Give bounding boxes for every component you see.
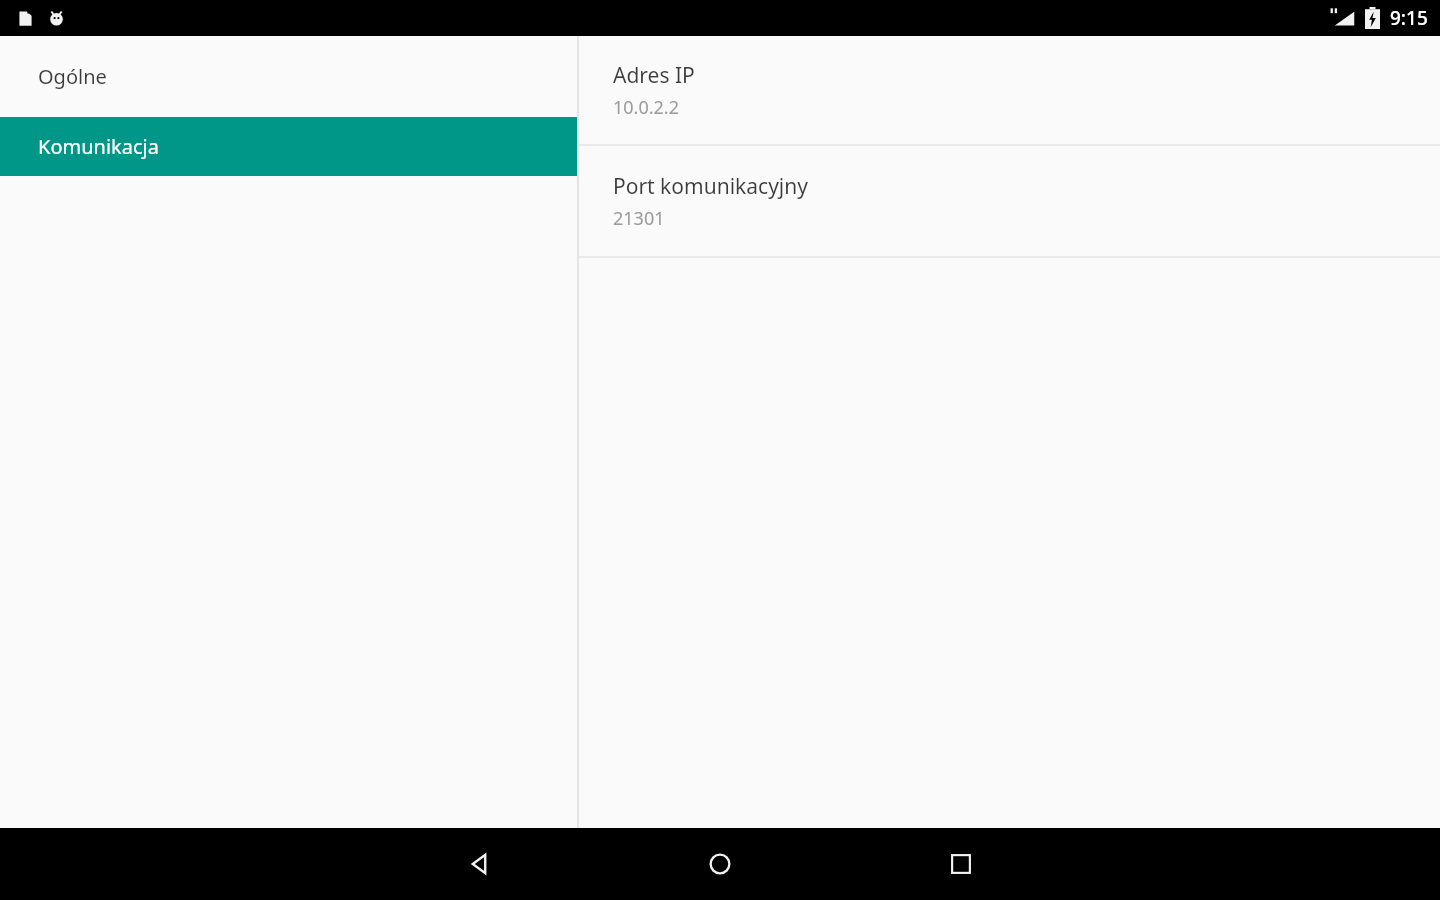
- button[interactable]: Back: [443, 828, 515, 900]
- staticText: 21301: [613, 206, 665, 231]
- staticText: Adres IP: [613, 61, 695, 90]
- staticText: Port komunikacyjny: [613, 172, 808, 201]
- button[interactable]: Recents: [925, 828, 997, 900]
- button[interactable]: Komunikacja: [0, 117, 577, 176]
- button[interactable]: Port komunikacyjny: [579, 146, 1440, 256]
- button[interactable]: Ogólne: [0, 36, 577, 117]
- staticText: 10.0.2.2: [613, 95, 679, 120]
- button[interactable]: Home: [684, 828, 756, 900]
- staticText: Komunikacja: [38, 133, 159, 160]
- button[interactable]: Adres IP: [579, 36, 1440, 144]
- staticText: Ogólne: [38, 63, 107, 90]
- staticText: 9:15: [1390, 5, 1428, 31]
